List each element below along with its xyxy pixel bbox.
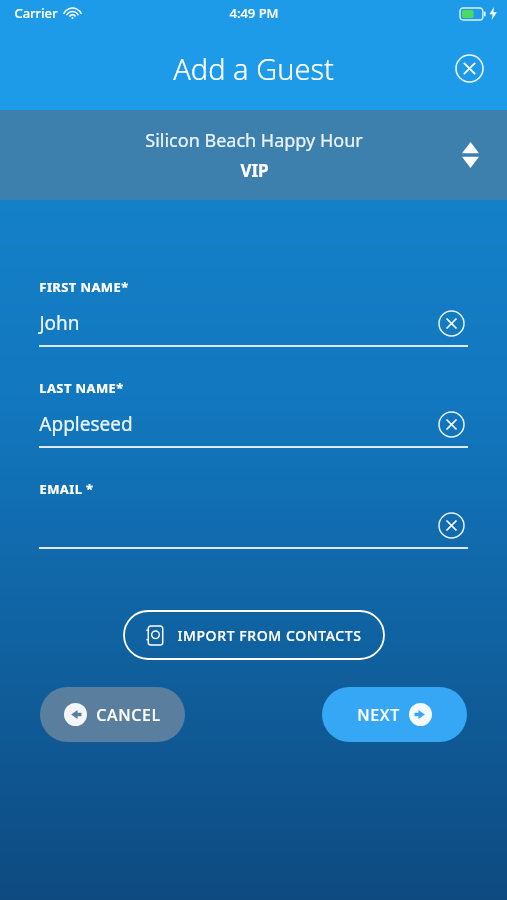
staticText: Carrier bbox=[14, 4, 58, 22]
button[interactable]: NEXT bbox=[322, 687, 467, 742]
staticText: CANCEL bbox=[96, 704, 161, 726]
button[interactable]: Silicon Beach Happy Hour bbox=[0, 110, 507, 200]
staticText: EMAIL * bbox=[39, 480, 94, 498]
button[interactable] bbox=[124, 611, 384, 659]
staticText: FIRST NAME* bbox=[39, 278, 129, 296]
staticText: IMPORT FROM CONTACTS bbox=[177, 626, 362, 645]
staticText: Add a Guest bbox=[173, 49, 334, 88]
staticText: Silicon Beach Happy Hour bbox=[145, 128, 363, 153]
staticText: LAST NAME* bbox=[39, 379, 124, 397]
button[interactable]: Change ticket type bbox=[453, 138, 487, 172]
staticText: VIP bbox=[240, 159, 269, 182]
staticText: Appleseed bbox=[39, 411, 133, 437]
button[interactable]: Clear EMAIL * bbox=[434, 509, 468, 541]
button[interactable]: CANCEL bbox=[40, 687, 185, 742]
button[interactable]: Close bbox=[447, 46, 491, 90]
button[interactable]: Clear LAST NAME* bbox=[434, 408, 468, 440]
staticText: John bbox=[39, 310, 80, 336]
button[interactable]: Clear FIRST NAME* bbox=[434, 307, 468, 339]
staticText: NEXT bbox=[357, 704, 400, 726]
staticText: 4:49 PM bbox=[229, 4, 279, 22]
